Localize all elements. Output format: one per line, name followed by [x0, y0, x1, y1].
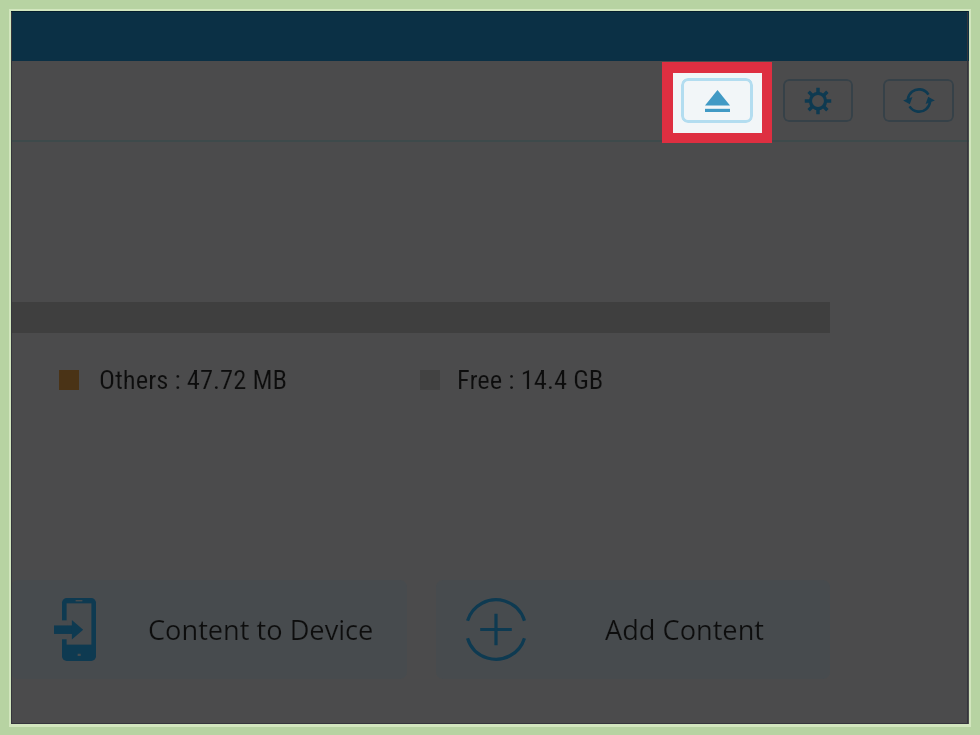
- button[interactable]: Eject: [681, 78, 753, 123]
- button[interactable]: Content to Device: [11, 580, 407, 679]
- staticText: Content to Device: [148, 611, 374, 648]
- staticText: Add Content: [605, 611, 764, 648]
- button[interactable]: Settings: [783, 79, 853, 122]
- button[interactable]: Refresh: [883, 79, 954, 122]
- button[interactable]: Add Content: [436, 580, 830, 679]
- staticText: Free : 14.4 GB: [457, 364, 604, 395]
- staticText: Others : 47.72 MB: [99, 364, 288, 395]
